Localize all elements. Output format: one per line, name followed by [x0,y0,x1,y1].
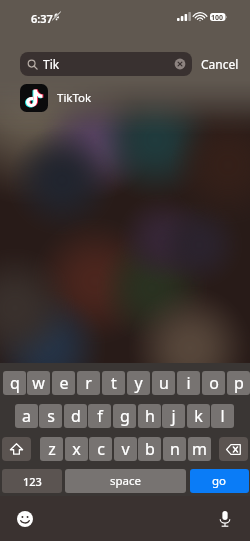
staticText: u [159,372,169,394]
staticText: o [209,372,219,394]
button[interactable]: q [3,371,26,395]
button[interactable]: Dictation [214,508,236,530]
button[interactable]: g [113,404,136,428]
staticText: v [121,438,130,460]
button[interactable]: Tik [20,52,192,76]
button[interactable]: Clear text [174,58,186,70]
staticText: a [22,405,31,427]
button[interactable]: n [163,437,186,461]
button[interactable]: b [138,437,161,461]
button[interactable]: j [162,404,185,428]
button[interactable]: u [152,371,175,395]
staticText: g [120,405,130,427]
button[interactable]: f [88,404,111,428]
staticText: q [10,372,20,394]
staticText: 6:37 [31,11,53,26]
button[interactable]: Shift [2,437,31,461]
button[interactable]: w [27,371,50,395]
button[interactable]: l [211,404,234,428]
button[interactable]: v [114,437,137,461]
staticText: space [110,473,142,489]
staticText: t [111,372,117,394]
staticText: k [194,405,203,427]
staticText: 123 [23,474,42,489]
button[interactable]: Cancel [201,52,239,76]
button[interactable]: Emoji [14,508,36,530]
button[interactable]: TikTok [0,76,250,120]
staticText: j [171,405,176,427]
button[interactable]: p [227,371,250,395]
button[interactable]: a [15,404,38,428]
button[interactable]: h [138,404,161,428]
staticText: c [97,438,105,460]
button[interactable]: o [202,371,225,395]
button[interactable]: m [188,437,211,461]
button[interactable]: e [52,371,75,395]
staticText: go [212,473,227,489]
staticText: s [47,405,55,427]
staticText: l [220,405,225,427]
staticText: 100 [211,13,224,21]
button[interactable]: t [102,371,125,395]
button[interactable]: x [65,437,88,461]
staticText: d [71,405,81,427]
staticText: Tik [43,56,60,72]
staticText: r [85,372,92,394]
button[interactable]: z [40,437,63,461]
staticText: TikTok [57,90,92,106]
staticText: z [48,438,56,460]
button[interactable]: space [65,469,186,493]
staticText: h [145,405,155,427]
staticText: i [186,372,191,394]
button[interactable]: i [177,371,200,395]
button[interactable]: 123 [2,469,62,493]
staticText: y [134,372,143,394]
staticText: w [32,372,45,394]
button[interactable]: c [89,437,112,461]
staticText: p [234,372,244,394]
staticText: x [72,438,81,460]
staticText: b [145,438,155,460]
button[interactable]: s [39,404,62,428]
button[interactable]: y [127,371,150,395]
button[interactable]: k [187,404,210,428]
staticText: n [170,438,180,460]
button[interactable]: go [190,469,249,493]
staticText: e [59,372,69,394]
button[interactable]: r [77,371,100,395]
staticText: m [192,438,207,460]
staticText: Cancel [201,56,239,72]
staticText: f [97,405,103,427]
button[interactable]: Backspace [219,437,248,461]
button[interactable]: d [64,404,87,428]
